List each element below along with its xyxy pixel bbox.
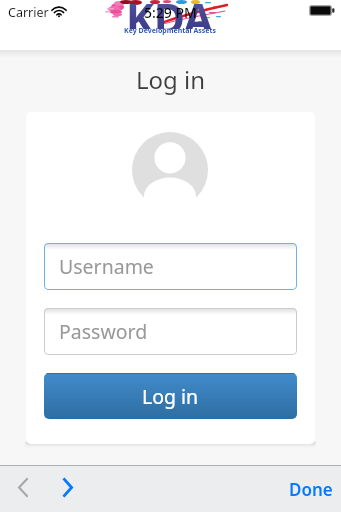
staticText: Username <box>59 253 154 280</box>
button[interactable]: Username <box>44 243 297 290</box>
staticText: 5:29 PM <box>144 3 197 22</box>
button[interactable]: Previous field <box>5 469 41 505</box>
staticText: Key Developmental Assets <box>124 26 217 36</box>
staticText: Done <box>289 478 333 501</box>
button[interactable]: Password <box>44 308 297 355</box>
staticText: KDA <box>126 0 213 29</box>
button[interactable]: Log in <box>44 373 297 419</box>
staticText: Carrier <box>8 4 49 21</box>
staticText: Password <box>59 318 148 345</box>
button[interactable]: Next field <box>50 469 86 505</box>
button[interactable]: Done <box>273 468 341 511</box>
staticText: Log in <box>0 63 341 96</box>
staticText: Log in <box>142 383 199 410</box>
